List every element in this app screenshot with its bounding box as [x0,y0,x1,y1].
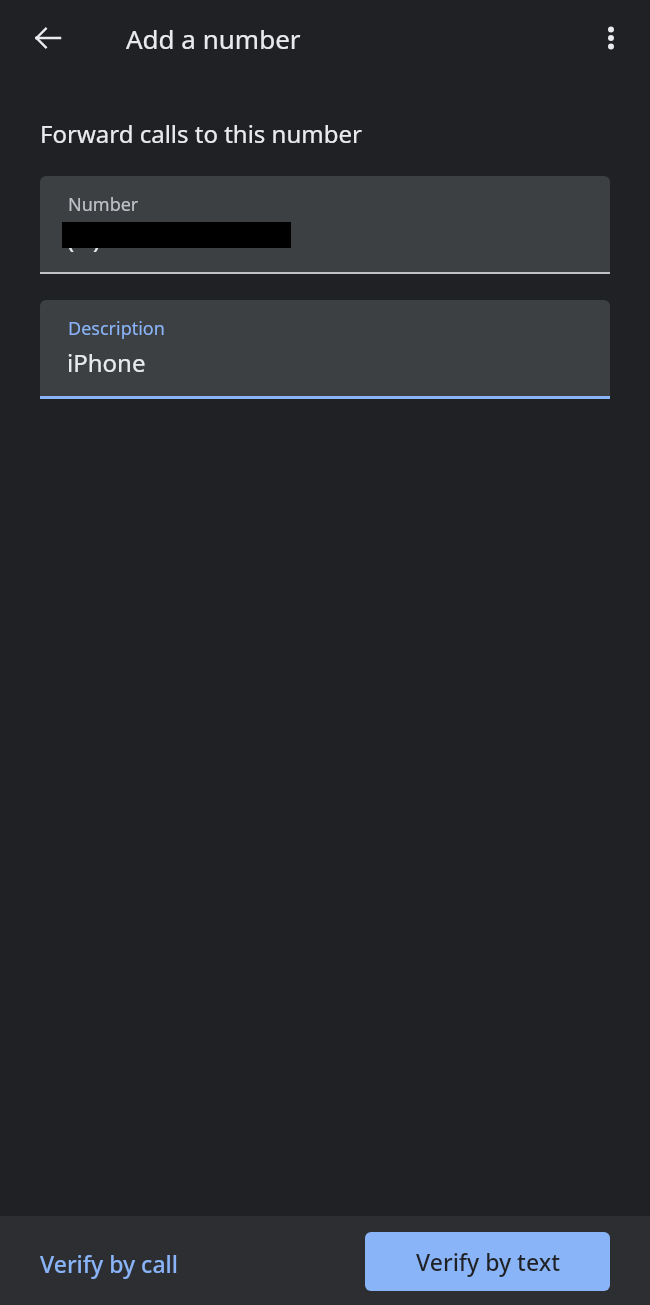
staticText: Forward calls to this number [40,117,362,150]
button[interactable]: Number [40,176,610,274]
button[interactable]: Back [20,10,76,66]
button[interactable]: More options [583,10,639,66]
staticText: Add a number [126,21,301,56]
staticText: Description [68,316,165,341]
staticText: Number [68,192,139,217]
staticText: ( ) - [67,222,127,255]
button[interactable]: Description [40,300,610,399]
staticText: Verify by call [40,1248,178,1279]
button[interactable]: Verify by call [24,1236,194,1291]
staticText: iPhone [67,346,146,379]
staticText: Verify by text [416,1246,560,1277]
button[interactable]: Verify by text [365,1232,610,1291]
